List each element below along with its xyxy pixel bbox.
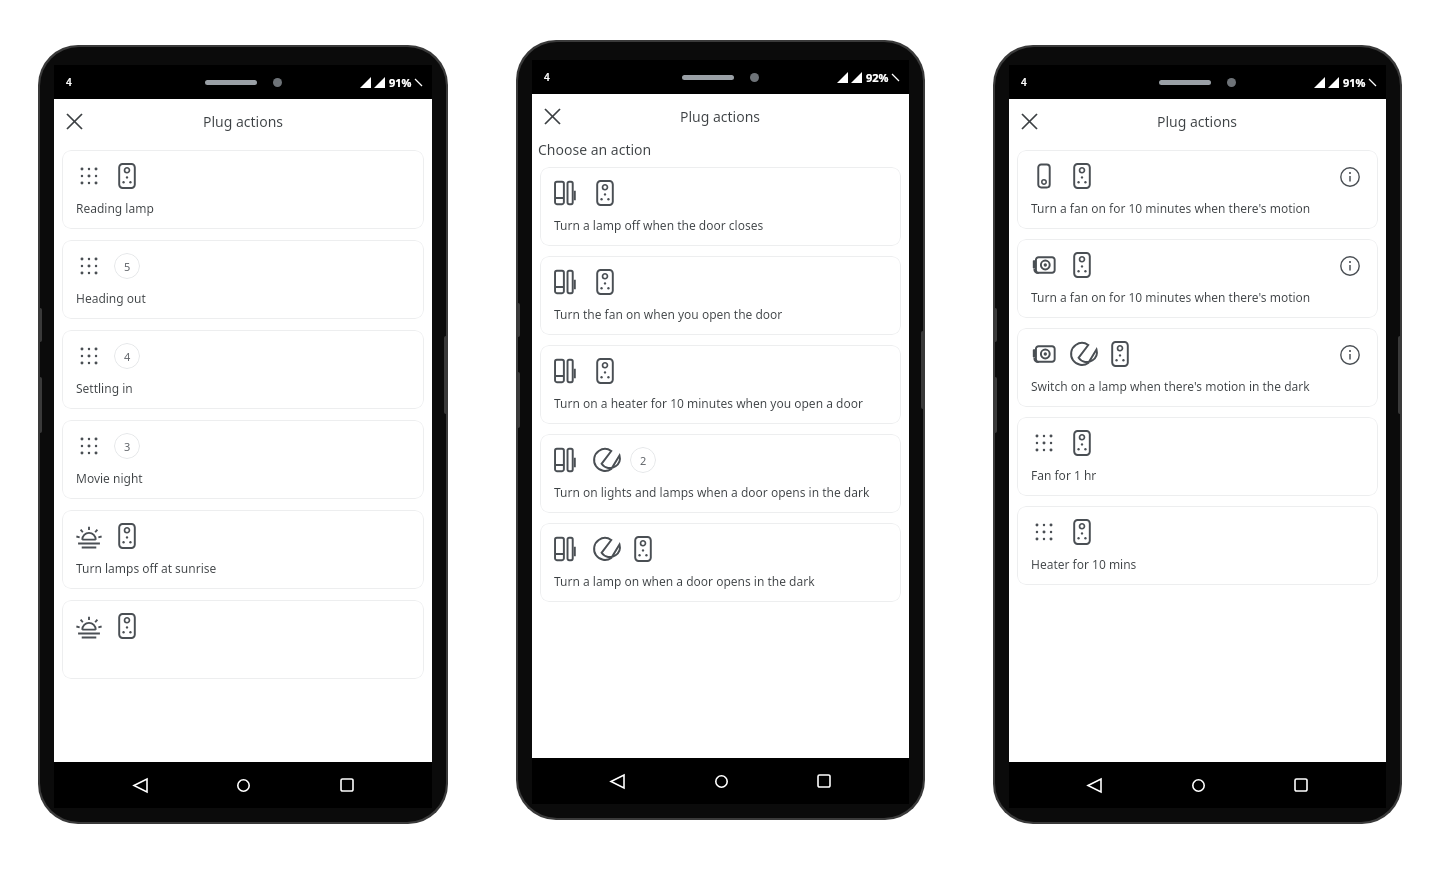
staticText: Plug actions [1157,112,1238,131]
button[interactable]: Home [703,763,739,799]
staticText: Choose an action [538,140,652,159]
staticText: Turn a lamp on when a door opens in the … [554,573,815,589]
button[interactable]: Recents [329,767,365,803]
staticText: Movie night [76,470,143,486]
button[interactable]: Turn the fan on when you open the door [540,256,901,335]
button[interactable]: Recents [806,763,842,799]
button[interactable]: 2 [540,434,901,513]
button[interactable]: More information [1336,163,1364,191]
button[interactable]: Back [122,767,158,803]
button[interactable]: Turn a lamp off when the door closes [540,167,901,246]
button[interactable]: Turn on a heater for 10 minutes when you… [540,345,901,424]
staticText: 3 [124,439,131,454]
button[interactable]: Fan for 1 hr [1017,417,1378,496]
staticText: Turn a lamp off when the door closes [554,217,764,233]
staticText: Heater for 10 mins [1031,556,1137,572]
button[interactable]: More information [1336,341,1364,369]
button[interactable]: 3 [62,420,424,499]
button[interactable]: Back [1076,767,1112,803]
button[interactable]: Close [54,101,94,141]
staticText: 5 [124,259,131,274]
staticText: 92% [866,70,889,85]
staticText: Turn a fan on for 10 minutes when there'… [1031,289,1311,305]
staticText: Fan for 1 hr [1031,467,1097,483]
staticText: Turn a fan on for 10 minutes when there'… [1031,200,1311,216]
button[interactable]: Back [599,763,635,799]
staticText: Turn on lights and lamps when a door ope… [554,484,870,500]
button[interactable]: Home [1180,767,1216,803]
button[interactable]: Reading lamp [62,150,424,229]
staticText: 91% [389,75,412,90]
button[interactable]: Close [532,96,572,136]
button[interactable]: Home [225,767,261,803]
staticText: 4 [1021,75,1027,89]
staticText: Heading out [76,290,146,306]
button[interactable]: More information [1336,252,1364,280]
staticText: 4 [544,70,550,84]
staticText: Turn on a heater for 10 minutes when you… [554,395,863,411]
button[interactable]: 4 [62,330,424,409]
staticText: 2 [640,453,647,468]
button[interactable]: 5 [62,240,424,319]
button[interactable]: Turn a lamp on when a door opens in the … [540,523,901,602]
staticText: Turn lamps off at sunrise [76,560,217,576]
staticText: 91% [1343,75,1366,90]
button[interactable] [62,600,424,679]
staticText: 4 [66,75,72,89]
button[interactable]: Heater for 10 mins [1017,506,1378,585]
staticText: 4 [124,349,131,364]
staticText: Reading lamp [76,200,154,216]
button[interactable]: Recents [1283,767,1319,803]
staticText: Plug actions [680,107,761,126]
button[interactable]: Close [1009,101,1049,141]
button[interactable]: Turn a fan on for 10 minutes when there'… [1017,150,1378,229]
button[interactable]: Turn a fan on for 10 minutes when there'… [1017,239,1378,318]
button[interactable]: Switch on a lamp when there's motion in … [1017,328,1378,407]
staticText: Turn the fan on when you open the door [554,306,783,322]
staticText: Plug actions [203,112,284,131]
staticText: Switch on a lamp when there's motion in … [1031,378,1310,394]
button[interactable]: Turn lamps off at sunrise [62,510,424,589]
staticText: Settling in [76,380,133,396]
